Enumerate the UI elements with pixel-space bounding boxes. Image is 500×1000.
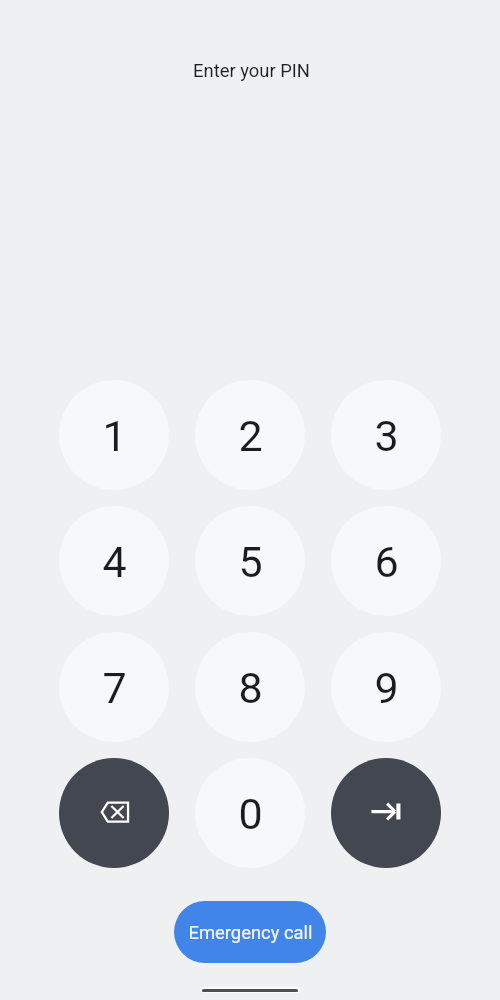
button[interactable]: 7 [59,632,169,742]
button[interactable]: 1 [59,380,169,490]
staticText: 6 [374,537,399,587]
button[interactable]: 5 [195,506,305,616]
button[interactable]: Backspace [59,758,169,868]
button[interactable]: 3 [331,380,441,490]
button[interactable]: 2 [195,380,305,490]
button[interactable]: Emergency call [174,901,326,963]
staticText: Enter your PIN [193,60,310,82]
button[interactable]: 9 [331,632,441,742]
staticText: 7 [102,663,127,713]
button[interactable]: 6 [331,506,441,616]
staticText: 4 [102,537,127,587]
staticText: 3 [374,411,399,461]
staticText: 9 [374,663,399,713]
button[interactable]: 8 [195,632,305,742]
button[interactable]: Enter [331,758,441,868]
staticText: 5 [238,537,263,587]
staticText: Emergency call [188,922,313,944]
staticText: 2 [238,411,263,461]
staticText: 1 [102,411,127,461]
button[interactable]: 4 [59,506,169,616]
staticText: 8 [238,663,263,713]
staticText: 0 [238,789,263,839]
button[interactable]: 0 [195,758,305,868]
